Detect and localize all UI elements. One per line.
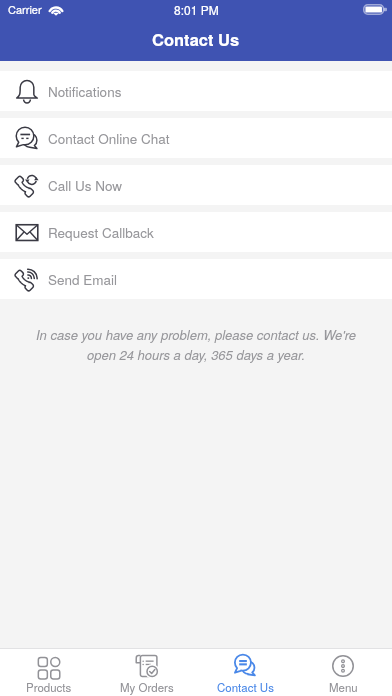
- button[interactable]: My Orders: [98, 649, 196, 696]
- staticText: Request Callback: [48, 223, 154, 242]
- staticText: Products: [26, 679, 72, 695]
- staticText: Menu: [329, 679, 358, 695]
- staticText: Call Us Now: [48, 176, 123, 195]
- staticText: Contact Online Chat: [48, 129, 170, 148]
- staticText: Send Email: [48, 270, 118, 289]
- button[interactable]: Contact Online Chat: [0, 118, 392, 158]
- button[interactable]: Call Us Now: [0, 165, 392, 205]
- staticText: Contact Us: [217, 679, 274, 695]
- staticText: 8:01 PM: [174, 1, 219, 18]
- staticText: In case you have any problem, please con…: [28, 325, 364, 364]
- staticText: Carrier: [8, 1, 42, 17]
- button[interactable]: Notifications: [0, 71, 392, 111]
- button[interactable]: Products: [0, 649, 98, 696]
- button[interactable]: Contact Us: [196, 649, 294, 696]
- button[interactable]: Request Callback: [0, 212, 392, 252]
- staticText: Notifications: [48, 82, 122, 101]
- staticText: Contact Us: [152, 27, 240, 51]
- button[interactable]: Send Email: [0, 259, 392, 299]
- button[interactable]: Menu: [294, 649, 392, 696]
- staticText: My Orders: [120, 679, 174, 695]
